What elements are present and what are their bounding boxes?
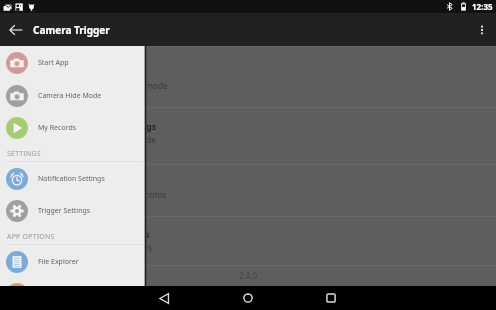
button[interactable]: Start app in background (0, 46, 496, 107)
button[interactable]: Back (155, 289, 173, 307)
staticText: Advanced app trigger settings (14, 228, 150, 240)
button[interactable]: Advanced app trigger settings (0, 216, 496, 265)
button[interactable]: Save photo location data (0, 164, 496, 216)
staticText: File Explorer (38, 257, 79, 267)
staticText: 12:35 (472, 1, 493, 12)
button[interactable]: File Explorer (0, 245, 144, 278)
staticText: Camera Trigger (33, 23, 110, 37)
button[interactable]: Camera hide mode app settings (0, 107, 496, 164)
staticText: Camera Hide Mode (38, 91, 102, 101)
button[interactable]: More options (468, 16, 496, 44)
staticText: Start app in background (14, 66, 123, 78)
staticText: Notification Settings (38, 174, 105, 184)
staticText: Hide the app icon in the hidden mode (14, 134, 156, 145)
button[interactable]: Image Gallery (0, 277, 144, 310)
staticText: Start the recording when in screen mode (14, 80, 168, 91)
staticText: Configure the expert trigger settings (14, 242, 152, 253)
staticText: Start App (38, 58, 69, 68)
button[interactable]: My Records (0, 111, 144, 144)
button[interactable]: Navigate up (0, 14, 32, 46)
staticText: 2.4.0 (239, 270, 258, 281)
button[interactable]: Camera Hide Mode (0, 79, 144, 112)
staticText: Camera hide mode app settings (14, 120, 157, 132)
button[interactable]: Home (239, 289, 257, 307)
staticText: SETTINGS (7, 149, 41, 159)
staticText: My Records (38, 123, 77, 133)
button[interactable]: Trigger Settings (0, 194, 144, 227)
staticText: APP OPTIONS (7, 232, 55, 242)
staticText: Save photo location data (14, 175, 126, 187)
button[interactable]: Recent apps (322, 289, 340, 307)
button[interactable]: Notification Settings (0, 162, 144, 195)
button[interactable]: Start App (0, 46, 144, 79)
staticText: Trigger Settings (38, 206, 91, 216)
staticText: Stores GPS location data for your photos (14, 189, 167, 200)
